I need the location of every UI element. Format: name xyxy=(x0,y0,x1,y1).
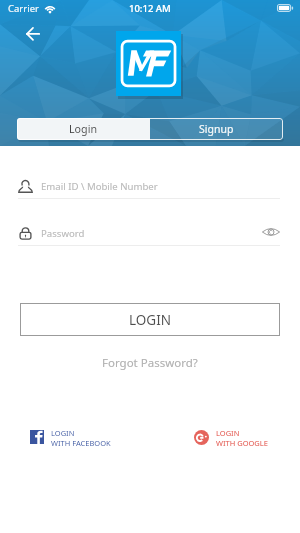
staticText: Forgot Password? xyxy=(102,355,198,371)
staticText: Email ID \ Mobile Number xyxy=(41,180,158,193)
button[interactable]: Forgot Password? xyxy=(0,354,300,372)
staticText: LOGIN xyxy=(216,428,240,438)
staticText: Login xyxy=(69,122,98,137)
button[interactable]: Signup xyxy=(150,118,283,140)
staticText: WITH GOOGLE xyxy=(216,438,268,446)
button[interactable]: Show password xyxy=(261,223,281,241)
staticText: LOGIN xyxy=(129,311,172,329)
staticText: Password xyxy=(41,227,262,240)
staticText: Signup xyxy=(199,122,234,136)
button[interactable]: Back xyxy=(21,21,45,45)
button[interactable]: LOGIN xyxy=(20,303,280,336)
staticText: LOGIN xyxy=(51,428,75,438)
staticText: Carrier xyxy=(8,2,39,14)
button[interactable]: LOGIN xyxy=(30,428,111,446)
button[interactable]: Login xyxy=(17,118,150,140)
staticText: 10:12 AM xyxy=(129,2,171,14)
button[interactable]: LOGIN xyxy=(194,428,268,446)
staticText: WITH FACEBOOK xyxy=(51,438,111,446)
